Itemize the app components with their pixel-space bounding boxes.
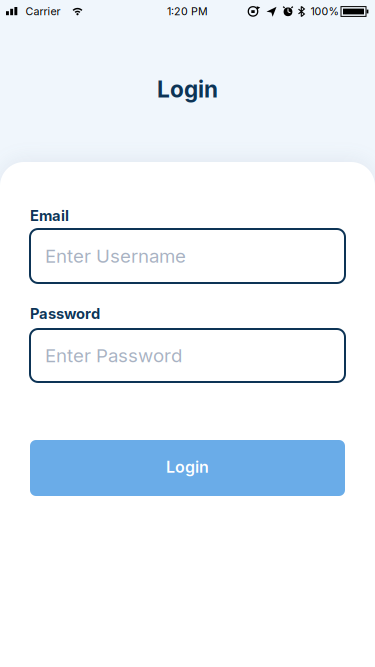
staticText: 100% [310, 5, 338, 18]
staticText: Enter Username [45, 245, 186, 267]
staticText: Enter Password [45, 344, 182, 366]
staticText: Login [157, 76, 218, 103]
button[interactable]: Login [30, 440, 345, 496]
staticText: Password [30, 305, 100, 322]
staticText: Email [30, 207, 69, 224]
staticText: 1:20 PM [167, 5, 208, 18]
staticText: Carrier [25, 5, 60, 18]
button[interactable]: Enter Username [30, 229, 345, 283]
button[interactable]: Enter Password [30, 329, 345, 382]
staticText: Login [166, 458, 209, 476]
